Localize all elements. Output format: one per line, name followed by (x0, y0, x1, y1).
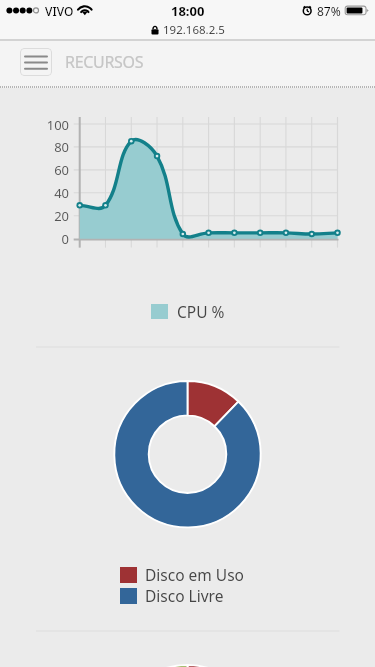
staticText: 20 (34, 207, 69, 225)
staticText: VIVO (45, 3, 74, 19)
staticText: CPU % (177, 301, 225, 322)
staticText: 87% (317, 3, 341, 19)
staticText: RECURSOS (65, 51, 144, 73)
button[interactable]: Menu (20, 48, 52, 76)
staticText: Disco em Uso (145, 564, 244, 585)
staticText: 100 (34, 116, 69, 134)
staticText: Disco Livre (145, 585, 224, 606)
staticText: 60 (34, 161, 69, 179)
staticText: 80 (34, 138, 69, 156)
staticText: 40 (34, 184, 69, 202)
staticText: 0 (34, 230, 69, 248)
staticText: 18:00 (171, 2, 205, 20)
staticText: 192.168.2.5 (163, 22, 225, 38)
